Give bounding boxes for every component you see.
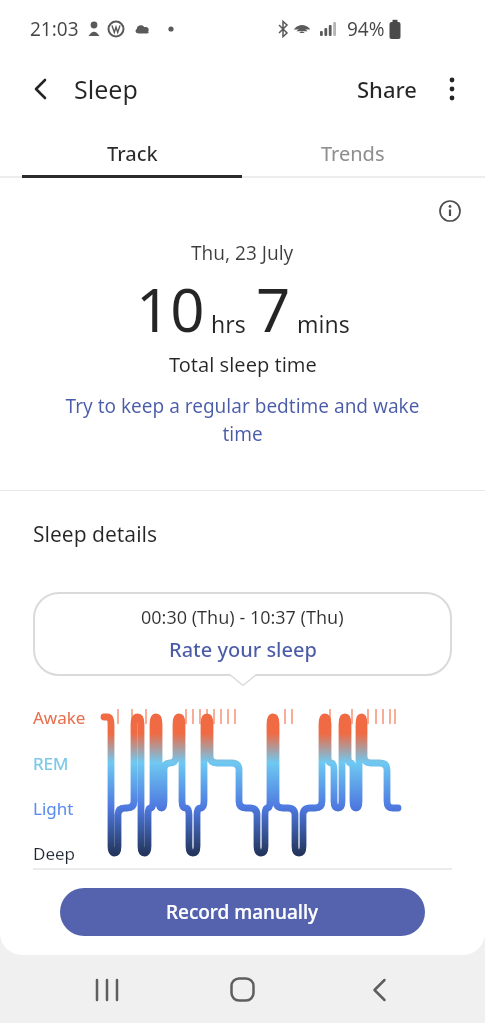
button[interactable]	[218, 956, 266, 1023]
button[interactable]: 00:30 (Thu) - 10:37 (Thu)	[33, 592, 452, 676]
button[interactable]: Record manually	[60, 888, 425, 936]
staticText: 10	[136, 268, 205, 350]
staticText: Rate your sleep	[169, 636, 317, 663]
staticText: Track	[107, 140, 158, 167]
staticText: Light	[33, 797, 74, 820]
button[interactable]: Track	[22, 120, 242, 178]
staticText: Sleep	[74, 72, 138, 106]
button[interactable]	[83, 956, 131, 1023]
staticText: Thu, 23 July	[191, 240, 294, 266]
staticText: Awake	[33, 706, 86, 729]
staticText: 21:03	[30, 16, 79, 42]
staticText: Try to keep a regular bedtime and wake t…	[0, 393, 485, 447]
staticText: 7	[256, 268, 291, 350]
staticText: 94%	[347, 16, 385, 42]
staticText: Total sleep time	[169, 351, 317, 378]
button[interactable]	[443, 76, 461, 102]
staticText: mins	[297, 308, 350, 339]
staticText: 00:30 (Thu) - 10:37 (Thu)	[141, 605, 344, 630]
button[interactable]	[439, 200, 461, 222]
staticText: Sleep details	[33, 520, 158, 549]
button[interactable]	[28, 76, 54, 102]
button[interactable]: Trends	[242, 120, 463, 178]
staticText: Deep	[33, 842, 76, 865]
staticText: hrs	[211, 308, 246, 339]
staticText: Trends	[321, 140, 385, 167]
button[interactable]: Share	[357, 74, 417, 104]
button[interactable]	[356, 956, 404, 1023]
staticText: REM	[33, 752, 69, 775]
staticText: Record manually	[166, 899, 319, 925]
